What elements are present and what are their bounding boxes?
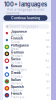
staticText: German	[11, 50, 24, 54]
staticText: Portuguese	[11, 43, 29, 47]
staticText: Hangugeo	[11, 68, 27, 71]
button[interactable]: German	[3, 50, 51, 57]
button[interactable]: Greek	[3, 71, 51, 78]
staticText: A2	[45, 38, 49, 42]
staticText: Schwyz	[11, 61, 23, 65]
staticText: Japanese	[11, 29, 27, 34]
staticText: Korean	[11, 64, 22, 68]
staticText: Suomi	[11, 40, 20, 44]
button[interactable]: Spanish	[3, 85, 51, 92]
staticText: A1	[46, 66, 49, 69]
staticText: Espanol	[11, 89, 23, 92]
staticText: A1	[46, 52, 49, 55]
staticText: C1	[46, 87, 49, 90]
staticText: A1	[46, 94, 49, 97]
button[interactable]: Korean	[3, 64, 51, 71]
staticText: Italian	[11, 78, 21, 82]
button[interactable]: Finnish	[3, 37, 51, 43]
staticText: Deutsch	[11, 54, 23, 58]
staticText: B1	[46, 45, 49, 48]
button[interactable]: Italian	[3, 78, 51, 85]
staticText: Finnish	[11, 36, 23, 40]
staticText: B2	[45, 59, 49, 62]
button[interactable]: Continue learning	[3, 15, 47, 21]
button[interactable]: Portuguese	[3, 43, 51, 50]
staticText: Nihongo	[11, 34, 24, 37]
button[interactable]: Swiss	[3, 57, 51, 64]
staticText: Italiano	[11, 82, 23, 85]
staticText: Swiss	[11, 57, 21, 61]
button[interactable]: French	[3, 92, 51, 99]
staticText: A2	[45, 73, 49, 76]
staticText: French	[11, 91, 22, 96]
staticText: A1	[46, 31, 49, 35]
staticText: Spanish	[11, 85, 24, 89]
staticText: Pick a language to start learning	[6, 8, 44, 15]
staticText: Ellinika	[11, 75, 23, 78]
button[interactable]: Japanese	[3, 30, 51, 37]
staticText: Continue learning	[11, 16, 40, 20]
staticText: 100+ languages	[4, 1, 47, 8]
staticText: Greek	[11, 71, 21, 75]
staticText: Francais	[11, 96, 24, 99]
staticText: Search languages	[10, 25, 39, 28]
staticText: Brasil	[11, 47, 19, 51]
staticText: B1	[46, 80, 49, 83]
